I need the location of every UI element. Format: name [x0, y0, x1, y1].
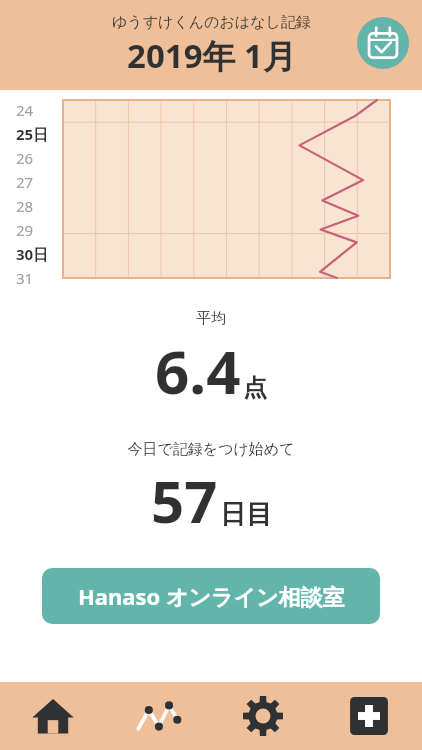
staticText: 日目 — [220, 498, 272, 531]
button[interactable]: Add record — [316, 682, 422, 750]
staticText: 今日で記録をつけ始めて — [127, 440, 295, 459]
button[interactable]: Settings — [210, 682, 316, 750]
staticText: 点 — [243, 373, 267, 403]
staticText: 31 — [16, 268, 34, 288]
staticText: 平均 — [196, 309, 226, 328]
staticText: 25日 — [16, 124, 49, 144]
button[interactable]: Hanaso オンライン相談室 — [42, 568, 380, 624]
button[interactable]: Home — [0, 682, 105, 750]
staticText: 2019年 1月 — [127, 33, 296, 78]
staticText: 29 — [16, 220, 34, 240]
staticText: Hanaso オンライン相談室 — [78, 581, 345, 611]
button[interactable]: Records chart — [105, 682, 210, 750]
staticText: 28 — [16, 196, 34, 216]
staticText: ゆうすけくんのおはなし記録 — [112, 13, 311, 32]
staticText: 57 — [151, 461, 218, 540]
staticText: 26 — [16, 148, 34, 168]
staticText: 30日 — [16, 244, 49, 264]
staticText: 24 — [16, 100, 34, 120]
button[interactable]: Calendar — [357, 17, 409, 69]
staticText: 27 — [16, 172, 34, 192]
staticText: 6.4 — [155, 330, 241, 412]
